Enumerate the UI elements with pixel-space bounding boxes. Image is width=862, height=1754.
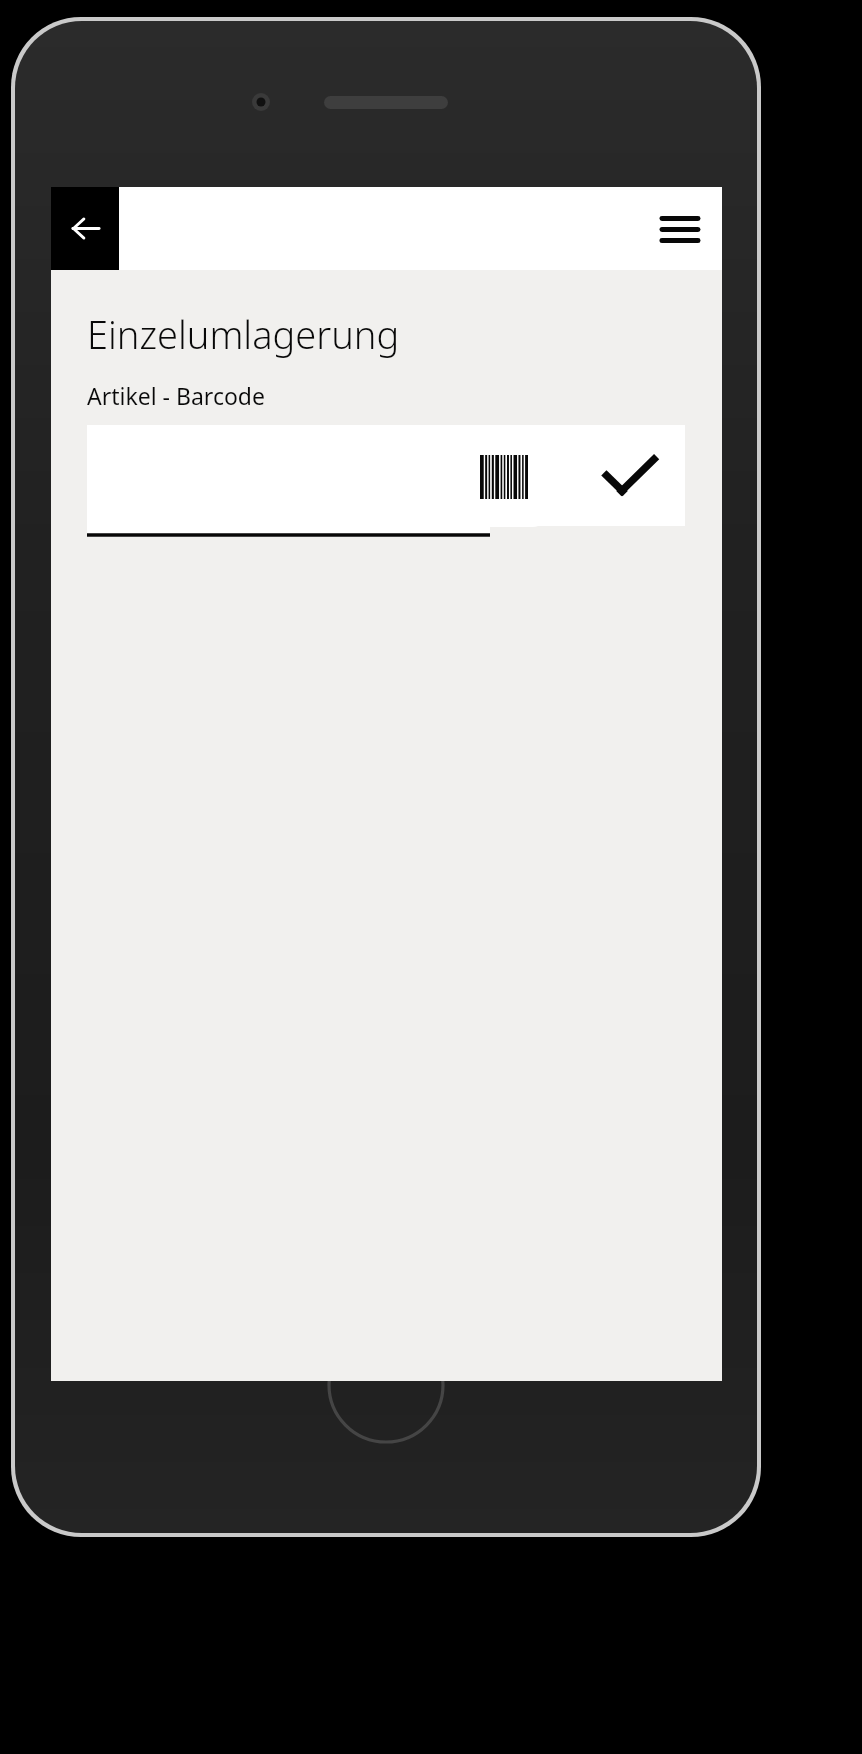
staticText: Einzelumlagerung <box>87 308 400 360</box>
button[interactable]: Menu <box>650 199 710 259</box>
button[interactable]: Confirm <box>574 425 685 526</box>
staticText: Artikel - Barcode <box>87 380 265 411</box>
button[interactable]: Back <box>51 187 119 270</box>
button[interactable]: Scan barcode <box>462 427 546 527</box>
button[interactable] <box>87 425 490 537</box>
